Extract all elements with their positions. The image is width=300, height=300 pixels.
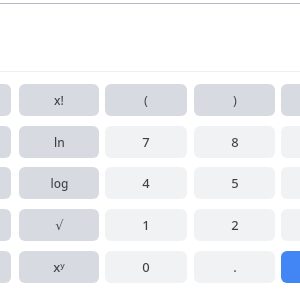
button[interactable]: 7 [105,126,187,158]
staticText: . [233,258,237,276]
button[interactable]: 4 [105,167,187,199]
button[interactable]: Function key [0,167,11,199]
staticText: 7 [142,133,150,151]
button[interactable]: Function key [0,251,11,283]
button[interactable]: Equals [281,251,300,283]
staticText: 5 [231,174,239,192]
staticText: 0 [142,258,150,276]
staticText: 4 [142,174,150,192]
staticText: ln [54,134,65,150]
staticText: log [50,175,69,191]
button[interactable]: ) [194,84,275,116]
button[interactable]: 8 [194,126,275,158]
button[interactable]: Key [281,84,300,116]
button[interactable]: Function key [0,209,11,241]
button[interactable]: 5 [194,167,275,199]
button[interactable]: 2 [194,209,275,241]
staticText: √ [55,218,64,233]
staticText: x! [54,92,64,108]
staticText: 2 [231,216,239,234]
button[interactable]: ln [19,126,99,158]
button[interactable]: 1 [105,209,187,241]
button[interactable]: log [19,167,99,199]
staticText: ) [233,91,237,109]
staticText: xʸ [53,258,65,276]
button[interactable]: √ [19,209,99,241]
button[interactable]: xʸ [19,251,99,283]
button[interactable]: Function key [0,126,11,158]
staticText: 1 [142,216,150,234]
staticText: 8 [231,133,239,151]
button[interactable]: ( [105,84,187,116]
button[interactable]: x! [19,84,99,116]
button[interactable]: . [194,251,275,283]
button[interactable]: Function key [0,84,11,116]
button[interactable]: 0 [105,251,187,283]
staticText: ( [144,91,148,109]
